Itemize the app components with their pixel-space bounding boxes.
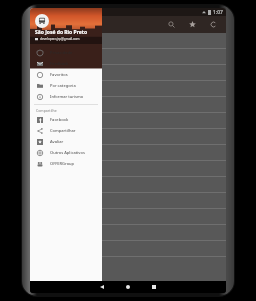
button[interactable] <box>30 113 226 129</box>
button[interactable] <box>30 209 226 225</box>
button[interactable]: Favorites <box>186 18 199 31</box>
staticText: developer.sjrp@gmail.com <box>40 37 80 41</box>
button[interactable]: Avaliar <box>30 136 102 147</box>
button[interactable]: Search <box>165 18 178 31</box>
button[interactable]: Privacidade <box>30 47 102 58</box>
button[interactable] <box>30 129 226 145</box>
button[interactable]: Favoritos <box>30 69 102 80</box>
staticText: Outros Aplicativos <box>50 150 85 155</box>
button[interactable]: Compartilhar <box>30 125 102 136</box>
button[interactable] <box>30 241 226 257</box>
button[interactable]: Back <box>95 281 109 293</box>
button[interactable]: Profile <box>35 14 49 28</box>
button[interactable]: Home <box>121 281 135 293</box>
staticText: 1:07 <box>213 9 223 16</box>
button[interactable]: Por categoria <box>30 80 102 91</box>
button[interactable] <box>30 145 226 161</box>
button[interactable] <box>30 193 226 209</box>
button[interactable] <box>30 81 226 97</box>
staticText: Favoritos <box>50 72 68 77</box>
staticText: Informar turismo <box>50 94 84 99</box>
staticText: OFFERGroup <box>50 161 75 166</box>
staticText: São José do Rio Preto <box>35 29 88 36</box>
staticText: Compartilhe <box>36 108 57 113</box>
button[interactable]: Profile <box>30 8 102 44</box>
button[interactable]: Feedback <box>30 58 102 69</box>
button[interactable] <box>30 161 226 177</box>
staticText: Por categoria <box>50 83 76 88</box>
button[interactable] <box>30 33 226 49</box>
button[interactable]: Informar turismo <box>30 91 102 102</box>
button[interactable]: Refresh <box>207 18 220 31</box>
button[interactable] <box>30 97 226 113</box>
staticText: Compartilhar <box>50 128 76 133</box>
button[interactable]: OFFERGroup <box>30 158 102 169</box>
button[interactable]: Outros Aplicativos <box>30 147 102 158</box>
button[interactable] <box>30 177 226 193</box>
button[interactable]: Facebook <box>30 114 102 125</box>
button[interactable] <box>30 225 226 241</box>
button[interactable]: Recent apps <box>147 281 161 293</box>
button[interactable] <box>30 49 226 65</box>
staticText: Avaliar <box>50 139 64 144</box>
staticText: Facebook <box>50 117 69 122</box>
button[interactable] <box>30 65 226 81</box>
